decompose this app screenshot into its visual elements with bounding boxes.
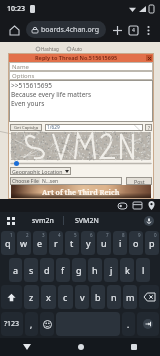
button[interactable]: 1/629 bbox=[45, 124, 143, 131]
button[interactable]: s bbox=[24, 258, 38, 282]
staticText: 5 bbox=[74, 232, 77, 238]
staticText: h bbox=[92, 264, 98, 276]
button[interactable]: Geographic Location bbox=[10, 167, 71, 175]
staticText: ?123 bbox=[4, 319, 20, 329]
button[interactable]: ?123 bbox=[1, 312, 23, 336]
staticText: 4 bbox=[58, 232, 61, 238]
button[interactable]: n bbox=[107, 285, 121, 309]
button[interactable]: y bbox=[81, 231, 95, 255]
staticText: Art of the Third Reich bbox=[42, 188, 120, 198]
button[interactable]: x bbox=[41, 285, 56, 309]
staticText: p bbox=[149, 237, 155, 249]
button[interactable]: l bbox=[136, 258, 150, 282]
button[interactable]: Voice input bbox=[138, 212, 160, 229]
staticText: d bbox=[44, 264, 50, 276]
button[interactable]: Get Captcha bbox=[10, 124, 42, 131]
button[interactable]: f bbox=[56, 258, 70, 282]
button[interactable]: w bbox=[17, 231, 31, 255]
button[interactable]: Options bbox=[9, 71, 153, 80]
staticText: r bbox=[54, 237, 58, 249]
staticText: a bbox=[13, 264, 19, 276]
staticText: Even yours bbox=[11, 99, 45, 108]
button[interactable]: Attached image bbox=[11, 185, 151, 199]
staticText: u bbox=[101, 237, 107, 249]
button[interactable]: Home bbox=[5, 21, 23, 39]
button[interactable]: Enter bbox=[137, 312, 159, 336]
button[interactable]: boards.4chan.org/pol/th bbox=[26, 21, 106, 38]
staticText: Geographic Location bbox=[12, 168, 63, 175]
button[interactable]: Name bbox=[9, 62, 153, 71]
button[interactable]: SVM2N bbox=[64, 212, 110, 229]
button[interactable]: q bbox=[1, 231, 15, 255]
button[interactable]: Choose File bbox=[10, 177, 122, 185]
staticText: w bbox=[20, 237, 28, 249]
button[interactable]: Close bbox=[146, 55, 152, 61]
staticText: z bbox=[29, 291, 34, 303]
staticText: 10:23 bbox=[7, 4, 25, 14]
button[interactable]: u bbox=[97, 231, 111, 255]
button[interactable]: i bbox=[113, 231, 127, 255]
staticText: Options bbox=[12, 72, 35, 80]
button[interactable]: j bbox=[104, 258, 118, 282]
button[interactable]: , bbox=[25, 312, 38, 336]
button[interactable]: Emoji bbox=[40, 312, 54, 336]
staticText: y bbox=[86, 237, 91, 249]
button[interactable]: e bbox=[33, 231, 47, 255]
button[interactable]: z bbox=[24, 285, 39, 309]
button[interactable]: o bbox=[129, 231, 143, 255]
staticText: t bbox=[70, 237, 74, 249]
button[interactable]: New tab bbox=[109, 22, 125, 38]
button[interactable]: Home bbox=[54, 338, 107, 356]
button[interactable]: a bbox=[9, 258, 22, 282]
staticText: 3 bbox=[42, 232, 45, 238]
button[interactable]: r bbox=[49, 231, 63, 255]
staticText: Name bbox=[12, 63, 29, 71]
staticText: k bbox=[125, 264, 130, 276]
button[interactable]: Captcha image bbox=[11, 132, 151, 160]
button[interactable]: . bbox=[122, 312, 135, 336]
button[interactable]: Backspace bbox=[139, 285, 159, 309]
button[interactable]: v bbox=[75, 285, 89, 309]
button[interactable]: d bbox=[40, 258, 54, 282]
button[interactable]: b bbox=[91, 285, 105, 309]
button[interactable]: Keyboard menu bbox=[0, 212, 22, 229]
staticText: ? bbox=[148, 125, 150, 131]
staticText: Hashtag bbox=[41, 46, 59, 52]
staticText: m bbox=[126, 291, 135, 303]
button[interactable]: Recent apps bbox=[107, 338, 160, 356]
button[interactable]: Shift bbox=[1, 285, 22, 309]
button[interactable]: c bbox=[58, 285, 73, 309]
button[interactable]: k bbox=[120, 258, 134, 282]
staticText: boards.4chan.org/pol/th bbox=[41, 25, 100, 35]
button[interactable]: h bbox=[88, 258, 102, 282]
staticText: SVM2N bbox=[75, 216, 99, 226]
staticText: c bbox=[63, 291, 68, 303]
button[interactable]: m bbox=[123, 285, 137, 309]
button[interactable]: g bbox=[72, 258, 86, 282]
button[interactable]: Post bbox=[126, 177, 152, 185]
staticText: l bbox=[142, 264, 145, 276]
button[interactable]: Tabs bbox=[125, 22, 141, 38]
button[interactable]: Reply to Thread No.515615695 bbox=[8, 53, 154, 62]
button[interactable]: svm2n bbox=[22, 212, 63, 229]
staticText: q bbox=[5, 237, 11, 249]
staticText: 4 bbox=[132, 27, 135, 34]
button[interactable]: Back bbox=[0, 338, 54, 356]
button[interactable]: More options bbox=[141, 23, 155, 37]
button[interactable]: Captcha options bbox=[145, 124, 152, 131]
staticText: Because every life matters bbox=[11, 90, 92, 99]
button[interactable]: >>515615695 bbox=[9, 80, 153, 122]
button[interactable]: Payment methods bbox=[130, 199, 145, 212]
button[interactable]: Passwords bbox=[115, 199, 130, 212]
staticText: e bbox=[37, 237, 43, 249]
button[interactable]: t bbox=[65, 231, 79, 255]
staticText: v bbox=[80, 291, 85, 303]
staticText: i bbox=[119, 237, 122, 249]
button[interactable]: p bbox=[145, 231, 159, 255]
staticText: Get Captcha bbox=[14, 125, 39, 131]
staticText: 9 bbox=[138, 232, 141, 238]
staticText: 6 bbox=[90, 232, 93, 238]
staticText: n bbox=[111, 291, 117, 303]
button[interactable]: Addresses bbox=[145, 199, 157, 212]
